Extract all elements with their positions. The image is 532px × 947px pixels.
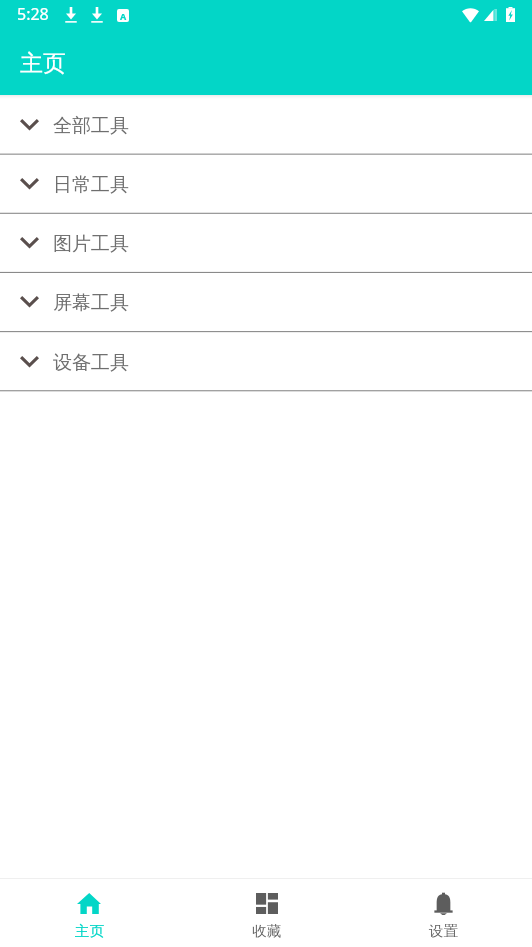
button[interactable]: 设备工具 <box>0 332 532 391</box>
button[interactable]: 全部工具 <box>0 95 532 154</box>
staticText: 设置 <box>429 922 458 940</box>
staticText: 屏幕工具 <box>53 291 129 315</box>
staticText: 主页 <box>20 49 66 78</box>
button[interactable]: 设置 <box>355 879 532 947</box>
button[interactable]: 收藏 <box>178 879 355 947</box>
staticText: 5:28 <box>17 3 49 25</box>
staticText: 图片工具 <box>53 232 129 256</box>
staticText: 收藏 <box>252 922 281 940</box>
button[interactable]: 屏幕工具 <box>0 272 532 331</box>
staticText: A <box>120 10 127 22</box>
staticText: 全部工具 <box>53 114 129 138</box>
button[interactable]: 主页 <box>0 879 178 947</box>
staticText: 设备工具 <box>53 351 129 375</box>
button[interactable]: 图片工具 <box>0 213 532 272</box>
staticText: 主页 <box>75 922 104 940</box>
button[interactable]: 日常工具 <box>0 154 532 213</box>
staticText: 日常工具 <box>53 173 129 197</box>
